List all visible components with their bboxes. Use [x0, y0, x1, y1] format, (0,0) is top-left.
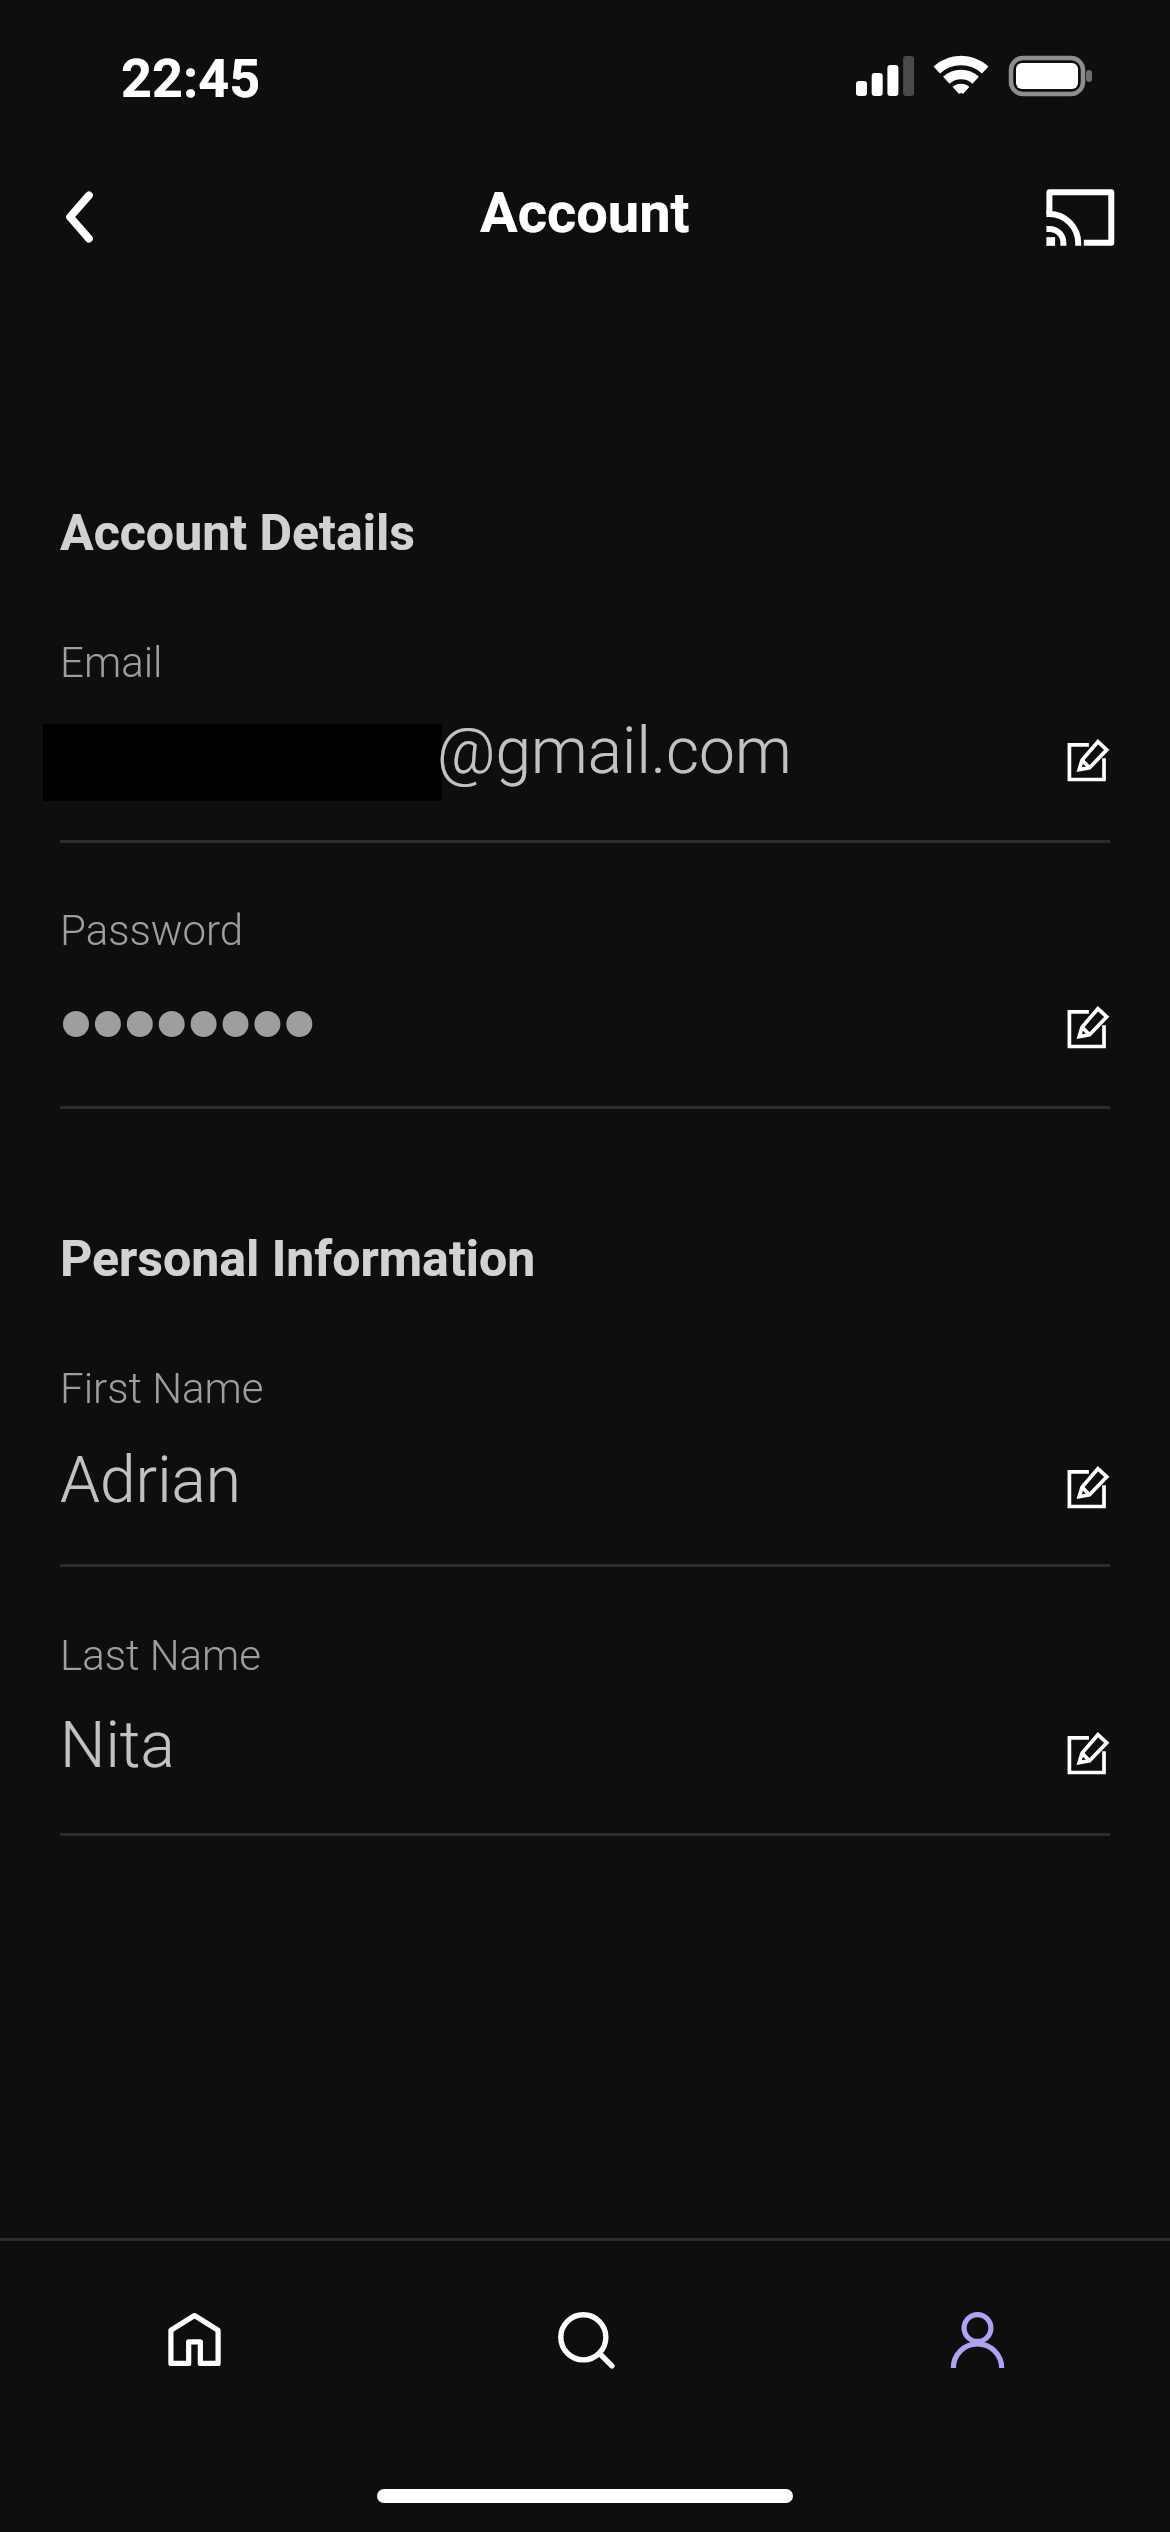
- button[interactable]: Edit password: [1041, 982, 1133, 1074]
- button[interactable]: Profile: [912, 2276, 1042, 2406]
- button[interactable]: Edit last name: [1041, 1708, 1133, 1800]
- staticText: Email: [60, 638, 163, 687]
- button[interactable]: [60, 620, 1110, 842]
- button[interactable]: Cast: [1030, 167, 1130, 267]
- button[interactable]: [60, 1346, 1110, 1565]
- button[interactable]: [60, 1613, 1110, 1834]
- staticText: First Name: [60, 1364, 264, 1413]
- staticText: Account: [480, 180, 690, 246]
- button[interactable]: Home: [129, 2274, 259, 2404]
- button[interactable]: [60, 888, 1110, 1107]
- staticText: Nita: [60, 1708, 175, 1783]
- button[interactable]: Search: [521, 2275, 651, 2405]
- staticText: Password: [60, 906, 244, 955]
- staticText: Personal Information: [60, 1230, 536, 1289]
- staticText: @gmail.com: [437, 714, 792, 789]
- staticText: Adrian: [60, 1443, 241, 1518]
- button[interactable]: Edit first name: [1041, 1442, 1133, 1534]
- staticText: 22:45: [121, 47, 261, 110]
- button[interactable]: Back: [29, 167, 129, 267]
- staticText: Account Details: [60, 504, 415, 563]
- staticText: Last Name: [60, 1631, 262, 1680]
- button[interactable]: Edit email: [1041, 715, 1133, 807]
